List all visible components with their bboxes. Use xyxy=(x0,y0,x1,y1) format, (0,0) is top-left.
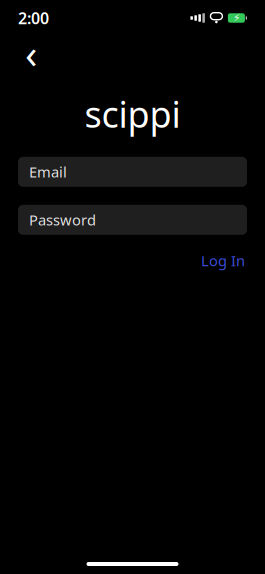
staticText: Email xyxy=(29,162,67,182)
button[interactable]: Log In xyxy=(199,247,247,274)
staticText: 2:00 xyxy=(18,7,49,29)
button[interactable]: Email xyxy=(18,157,247,187)
button[interactable]: Back xyxy=(14,38,48,68)
staticText: ⚡︎ xyxy=(233,12,240,24)
staticText: ‹ xyxy=(25,26,37,79)
staticText: scippi xyxy=(84,90,180,138)
staticText: Password xyxy=(29,210,96,230)
button[interactable]: Password xyxy=(18,205,247,235)
staticText: Log In xyxy=(201,251,245,270)
